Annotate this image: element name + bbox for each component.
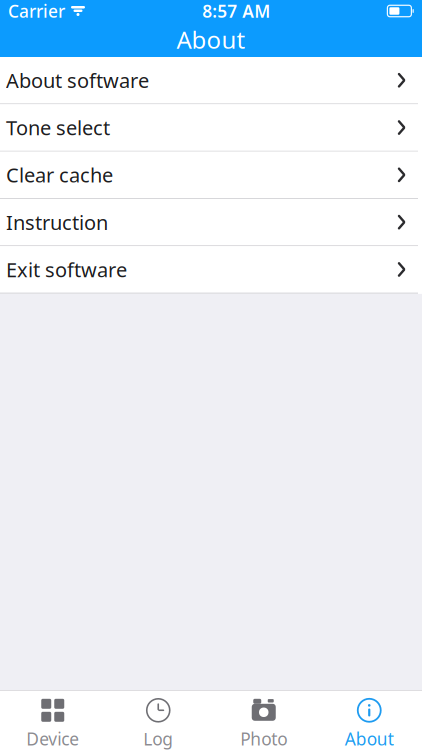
button[interactable]: About: [316, 691, 422, 750]
staticText: Carrier: [8, 0, 65, 22]
staticText: Exit software: [6, 256, 127, 283]
staticText: About software: [6, 67, 149, 94]
button[interactable]: Instruction: [0, 199, 422, 246]
button[interactable]: Log: [105, 691, 211, 750]
button[interactable]: Exit software: [0, 246, 422, 293]
button[interactable]: About software: [0, 57, 422, 104]
staticText: About: [176, 24, 245, 55]
staticText: About: [345, 727, 394, 750]
staticText: Instruction: [6, 209, 108, 235]
button[interactable]: Clear cache: [0, 152, 422, 199]
button[interactable]: Photo: [211, 691, 316, 750]
staticText: Device: [26, 727, 79, 750]
staticText: Clear cache: [6, 162, 113, 188]
staticText: Photo: [240, 727, 287, 750]
button[interactable]: Tone select: [0, 104, 422, 152]
staticText: Log: [143, 727, 173, 750]
staticText: Tone select: [6, 114, 110, 141]
staticText: 8:57 AM: [202, 0, 270, 22]
button[interactable]: Device: [0, 691, 105, 750]
